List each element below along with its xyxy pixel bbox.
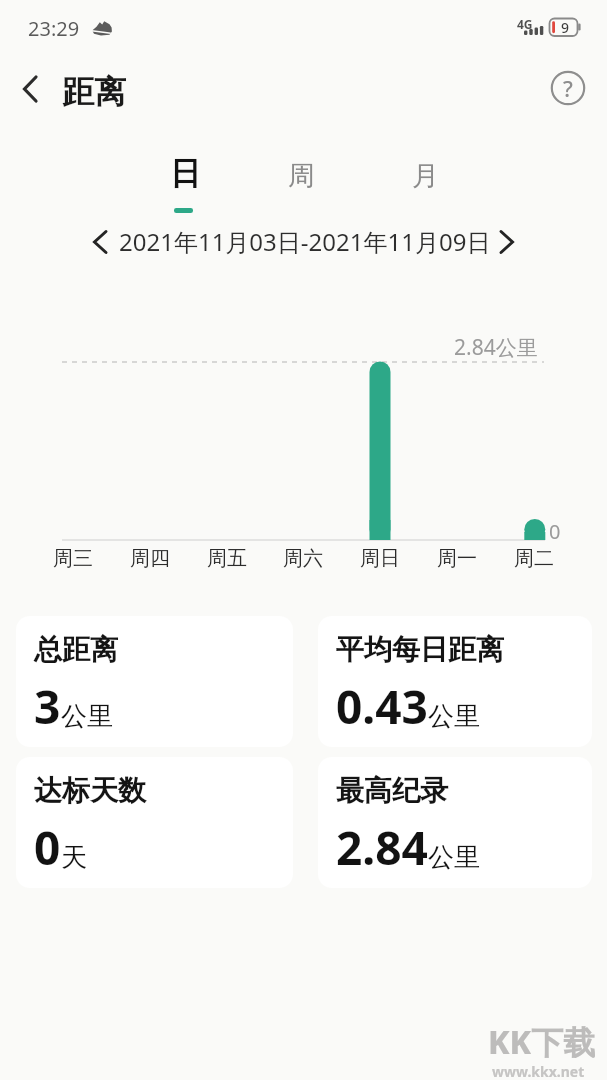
staticText: 周四 bbox=[130, 546, 170, 571]
button[interactable] bbox=[86, 229, 114, 255]
staticText: 4G bbox=[517, 16, 533, 32]
staticText: 9 bbox=[561, 18, 570, 37]
staticText: 3 bbox=[34, 675, 61, 738]
staticText: 月 bbox=[412, 159, 439, 193]
staticText: ? bbox=[563, 73, 573, 103]
staticText: 2021年11月03日-2021年11月09日 bbox=[119, 225, 491, 258]
staticText: 日 bbox=[170, 154, 201, 193]
staticText: 0 bbox=[549, 518, 561, 545]
button[interactable]: 平均每日距离 bbox=[318, 616, 592, 747]
staticText: 周 bbox=[288, 159, 315, 193]
staticText: 距离 bbox=[62, 72, 126, 112]
button[interactable]: 周 bbox=[261, 149, 341, 203]
staticText: 达标天数 bbox=[34, 773, 146, 808]
staticText: 2.84 bbox=[336, 816, 428, 879]
staticText: 周六 bbox=[283, 546, 323, 571]
button[interactable] bbox=[493, 229, 521, 255]
staticText: www.kkx.net bbox=[492, 1062, 585, 1080]
staticText: 0.43 bbox=[336, 675, 428, 738]
staticText: 周一 bbox=[437, 546, 477, 571]
staticText: 公里 bbox=[428, 841, 480, 874]
button[interactable]: 日 bbox=[145, 146, 225, 200]
staticText: 公里 bbox=[428, 700, 480, 733]
staticText: 周二 bbox=[514, 546, 554, 571]
button[interactable]: 最高纪录 bbox=[318, 757, 592, 888]
button[interactable]: 总距离 bbox=[16, 616, 293, 747]
staticText: KK下载 bbox=[488, 1020, 596, 1064]
staticText: 周日 bbox=[360, 546, 400, 571]
button[interactable] bbox=[15, 73, 47, 105]
button[interactable]: ? bbox=[550, 70, 586, 106]
staticText: 最高纪录 bbox=[336, 773, 448, 808]
staticText: 周三 bbox=[53, 546, 93, 571]
staticText: 2.84公里 bbox=[454, 333, 538, 362]
staticText: 23:29 bbox=[28, 15, 80, 42]
staticText: 周五 bbox=[207, 546, 247, 571]
staticText: 公里 bbox=[61, 700, 113, 733]
staticText: 0 bbox=[34, 816, 61, 879]
button[interactable]: 月 bbox=[385, 149, 465, 203]
staticText: 平均每日距离 bbox=[336, 632, 504, 667]
button[interactable]: 达标天数 bbox=[16, 757, 293, 888]
staticText: 天 bbox=[61, 841, 87, 874]
staticText: 总距离 bbox=[34, 632, 118, 667]
